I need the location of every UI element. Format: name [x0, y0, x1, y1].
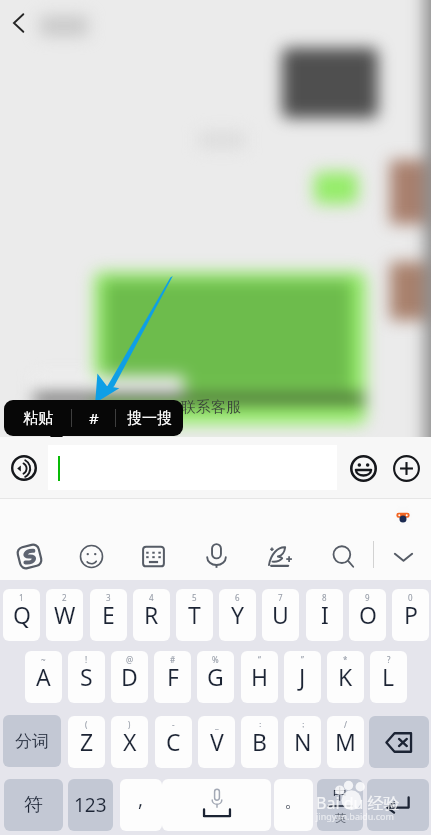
button[interactable]: Voice: [195, 535, 237, 577]
button[interactable]: Collapse keyboard: [382, 535, 424, 577]
button[interactable]: *: [327, 651, 364, 703]
button[interactable]: 123: [68, 779, 113, 831]
button[interactable]: “: [241, 651, 278, 703]
button[interactable]: 3: [90, 589, 127, 641]
button[interactable]: ：: [241, 716, 278, 768]
staticText: W: [54, 599, 76, 630]
staticText: ；: [299, 719, 307, 729]
staticText: 粘贴: [23, 409, 53, 428]
staticText: U: [272, 599, 289, 630]
button[interactable]: 分词: [3, 715, 61, 767]
staticText: E: [102, 599, 115, 630]
button[interactable]: 5: [176, 589, 213, 641]
staticText: 123: [74, 792, 107, 818]
staticText: _: [215, 719, 219, 730]
staticText: ): [128, 719, 131, 730]
button[interactable]: 1: [3, 589, 40, 641]
staticText: 2: [62, 592, 67, 603]
staticText: I: [321, 599, 329, 630]
staticText: A: [36, 661, 51, 692]
staticText: P: [404, 599, 418, 630]
staticText: M: [335, 726, 356, 757]
button[interactable]: Enter: [367, 779, 429, 831]
button[interactable]: 搜一搜: [116, 400, 183, 436]
staticText: %: [212, 654, 219, 665]
button[interactable]: #: [72, 400, 115, 436]
staticText: 英: [335, 811, 346, 825]
button[interactable]: Back: [2, 6, 36, 40]
button[interactable]: 0: [392, 589, 429, 641]
staticText: *: [343, 654, 348, 665]
staticText: S: [80, 661, 93, 692]
staticText: !: [85, 654, 88, 665]
button[interactable]: #: [154, 651, 191, 703]
staticText: (: [85, 719, 88, 730]
staticText: -: [172, 719, 175, 730]
staticText: 中: [333, 785, 348, 804]
button[interactable]: Sogou: [8, 535, 50, 577]
staticText: 5: [192, 592, 197, 603]
staticText: C: [166, 726, 181, 757]
staticText: B: [252, 726, 267, 757]
button[interactable]: ,: [120, 779, 162, 831]
staticText: Bai du 经验: [316, 792, 400, 814]
staticText: O: [359, 599, 377, 630]
staticText: 0: [408, 592, 413, 603]
button[interactable]: Space: [162, 779, 271, 831]
staticText: 。: [284, 789, 303, 813]
button[interactable]: !: [68, 651, 105, 703]
button[interactable]: 2: [46, 589, 83, 641]
button[interactable]: Emoji: [350, 455, 377, 482]
staticText: N: [294, 726, 312, 757]
button[interactable]: _: [198, 716, 235, 768]
button[interactable]: -: [155, 716, 192, 768]
staticText: #: [89, 408, 99, 428]
staticText: ,: [138, 786, 144, 812]
button[interactable]: 。: [274, 779, 313, 831]
staticText: 9: [365, 592, 370, 603]
button[interactable]: Backspace: [369, 716, 429, 768]
button[interactable]: 8: [306, 589, 343, 641]
staticText: 分词: [15, 731, 49, 752]
staticText: @: [126, 654, 134, 665]
button[interactable]: /: [327, 716, 364, 768]
button[interactable]: 粘贴: [4, 400, 71, 436]
button[interactable]: %: [197, 651, 234, 703]
button[interactable]: ；: [284, 716, 321, 768]
button[interactable]: ~: [25, 651, 62, 703]
staticText: 6: [235, 592, 240, 603]
staticText: Q: [13, 599, 31, 630]
staticText: 7: [278, 592, 283, 603]
button[interactable]: (: [68, 716, 105, 768]
button[interactable]: Chinese English toggle: [317, 779, 363, 831]
staticText: F: [167, 661, 179, 692]
button[interactable]: @: [111, 651, 148, 703]
button[interactable]: 4: [133, 589, 170, 641]
staticText: Y: [231, 599, 245, 630]
button[interactable]: 符: [4, 779, 63, 831]
staticText: 符: [24, 793, 43, 817]
button[interactable]: [48, 445, 337, 490]
staticText: ~: [41, 654, 46, 665]
staticText: 3: [106, 592, 111, 603]
button[interactable]: Search: [322, 535, 364, 577]
button[interactable]: 9: [349, 589, 386, 641]
button[interactable]: More: [393, 455, 420, 482]
staticText: 8: [322, 592, 327, 603]
button[interactable]: Voice input: [11, 455, 37, 481]
staticText: #: [170, 654, 176, 665]
button[interactable]: 7: [262, 589, 299, 641]
staticText: X: [123, 726, 137, 757]
staticText: ”: [301, 654, 304, 665]
button[interactable]: 6: [219, 589, 256, 641]
button[interactable]: Keyboard: [132, 535, 174, 577]
staticText: G: [207, 661, 224, 692]
button[interactable]: Emoji keyboard: [70, 535, 112, 577]
staticText: 4: [149, 592, 154, 603]
staticText: L: [382, 661, 395, 692]
button[interactable]: ?: [370, 651, 407, 703]
button[interactable]: ): [111, 716, 148, 768]
staticText: H: [251, 661, 269, 692]
button[interactable]: ”: [284, 651, 321, 703]
button[interactable]: Handwriting: [258, 535, 300, 577]
